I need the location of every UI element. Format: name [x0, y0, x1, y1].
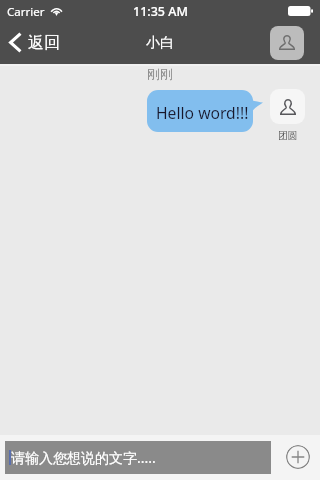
button[interactable]: 请输入您想说的文字..... [5, 441, 271, 474]
button[interactable]: Profile [270, 26, 304, 60]
button[interactable]: Contact avatar [270, 89, 305, 124]
staticText: 请输入您想说的文字..... [11, 448, 156, 467]
staticText: 小白 [146, 34, 174, 52]
staticText: Hello word!!! [156, 102, 249, 123]
staticText: Carrier [7, 4, 45, 20]
staticText: 11:35 AM [133, 3, 188, 20]
staticText: 返回 [28, 33, 60, 53]
button[interactable]: Hello word!!! [147, 90, 263, 132]
button[interactable]: 返回 [4, 28, 68, 57]
staticText: 刚刚 [0, 66, 320, 82]
staticText: 团圆 [278, 130, 298, 142]
button[interactable]: Add [286, 445, 310, 469]
